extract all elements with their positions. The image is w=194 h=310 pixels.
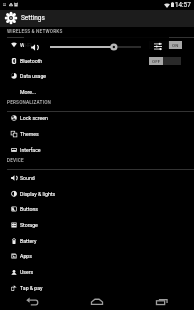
- button[interactable]: Themes: [0, 126, 194, 142]
- staticText: DEVICE: [7, 158, 24, 164]
- staticText: Buttons: [20, 206, 38, 212]
- staticText: More...: [20, 89, 37, 95]
- button[interactable]: OFF: [149, 57, 181, 65]
- button[interactable]: Home: [64, 292, 129, 310]
- button[interactable]: Back: [0, 292, 64, 310]
- staticText: OFF: [152, 59, 161, 64]
- staticText: Bluetooth: [20, 58, 43, 64]
- button[interactable]: Lock screen: [0, 110, 194, 126]
- button[interactable]: Sound settings: [154, 43, 162, 50]
- staticText: Apps: [20, 253, 32, 259]
- button[interactable]: Wi-Fi: [0, 37, 194, 53]
- button[interactable]: Recent apps: [129, 292, 194, 310]
- staticText: Tap & pay: [20, 285, 43, 291]
- button[interactable]: Interface: [0, 142, 194, 158]
- button[interactable]: Battery: [0, 233, 194, 249]
- staticText: Lock screen: [20, 115, 48, 121]
- button[interactable]: Display & lights: [0, 186, 194, 202]
- button[interactable]: Buttons: [0, 201, 194, 217]
- button[interactable]: Apps: [0, 248, 194, 264]
- staticText: WIRELESS & NETWORKS: [7, 29, 63, 35]
- button[interactable]: Data usage: [0, 68, 194, 84]
- staticText: Display & lights: [20, 191, 56, 197]
- button[interactable]: Bluetooth: [0, 53, 194, 69]
- button[interactable]: More...: [0, 84, 194, 100]
- staticText: Themes: [20, 131, 39, 137]
- staticText: Battery: [20, 238, 37, 244]
- staticText: Settings: [21, 14, 45, 22]
- button[interactable]: Users: [0, 264, 194, 280]
- staticText: 14:57: [175, 1, 191, 8]
- button[interactable]: Sound: [0, 170, 194, 186]
- staticText: Sound: [20, 175, 35, 181]
- staticText: Data usage: [20, 73, 47, 79]
- staticText: Users: [20, 269, 34, 275]
- staticText: Interface: [20, 147, 41, 153]
- staticText: ON: [172, 43, 179, 48]
- button[interactable]: ON: [149, 41, 181, 49]
- staticText: Storage: [20, 222, 38, 228]
- button[interactable]: Storage: [0, 217, 194, 233]
- staticText: Wi-Fi: [20, 42, 32, 48]
- button[interactable]: Tap & pay: [0, 280, 194, 296]
- staticText: PERSONALIZATION: [7, 100, 51, 106]
